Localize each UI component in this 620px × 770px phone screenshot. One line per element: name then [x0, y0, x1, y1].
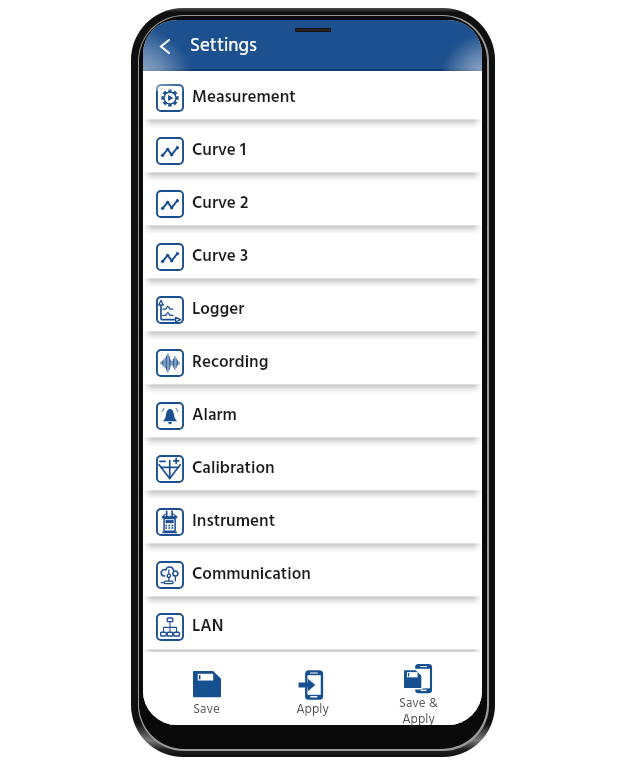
button[interactable]: Calibration [143, 442, 482, 495]
button[interactable]: Instrument [143, 495, 482, 548]
staticText: Measurement [192, 84, 296, 111]
button[interactable]: Communication [143, 548, 482, 601]
staticText: Alarm [192, 402, 237, 429]
staticText: Instrument [192, 508, 276, 535]
button[interactable]: Logger [143, 283, 482, 336]
staticText: Calibration [192, 455, 275, 482]
button[interactable]: Alarm [143, 389, 482, 442]
staticText: Save [193, 699, 220, 720]
staticText: Recording [192, 349, 269, 376]
button[interactable]: Curve 2 [143, 177, 482, 230]
button[interactable]: Curve 3 [143, 230, 482, 283]
staticText: Curve 2 [192, 190, 249, 217]
staticText: Settings [190, 31, 257, 61]
button[interactable]: Measurement [143, 71, 482, 124]
staticText: Curve 3 [192, 243, 249, 270]
button[interactable]: Recording [143, 336, 482, 389]
button[interactable]: Save & Apply [365, 652, 471, 725]
staticText: Logger [192, 296, 245, 323]
button[interactable]: Back [148, 29, 182, 63]
staticText: Save & Apply [399, 693, 438, 725]
staticText: Curve 1 [192, 137, 247, 164]
staticText: Communication [192, 561, 311, 588]
button[interactable]: LAN [143, 601, 482, 652]
staticText: Apply [296, 699, 329, 720]
staticText: LAN [192, 613, 224, 640]
button[interactable]: Apply [259, 652, 365, 725]
button[interactable]: Save [154, 652, 259, 725]
button[interactable]: Curve 1 [143, 124, 482, 177]
